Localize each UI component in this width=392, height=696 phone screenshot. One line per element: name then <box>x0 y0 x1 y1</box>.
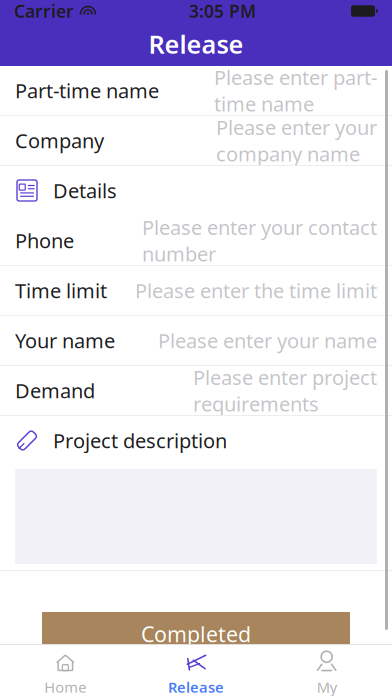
button[interactable]: My <box>261 644 392 696</box>
staticText: Please enter project requirements <box>193 364 377 417</box>
button[interactable]: Company <box>0 116 392 166</box>
button[interactable]: Project description <box>0 416 392 466</box>
staticText: Phone <box>15 227 74 254</box>
button[interactable]: Release <box>131 644 261 696</box>
staticText: Please enter part-time name <box>214 64 377 117</box>
staticText: Completed <box>141 620 251 648</box>
button[interactable]: Completed <box>42 612 350 656</box>
staticText: Home <box>44 677 86 696</box>
button[interactable]: Your name <box>0 316 392 366</box>
button[interactable]: Home <box>0 644 131 696</box>
staticText: Project description <box>53 427 227 454</box>
staticText: Carrier <box>14 0 74 22</box>
button[interactable] <box>0 466 392 564</box>
staticText: Please enter your company name <box>216 114 377 167</box>
staticText: Your name <box>15 327 115 354</box>
staticText: Details <box>53 177 117 204</box>
button[interactable]: Details <box>0 166 392 216</box>
staticText: Please enter your name <box>158 327 377 354</box>
button[interactable]: Demand <box>0 366 392 416</box>
staticText: Please enter your contact number <box>142 214 377 267</box>
button[interactable]: Time limit <box>0 266 392 316</box>
staticText: Release <box>168 677 224 696</box>
staticText: Time limit <box>15 277 107 304</box>
staticText: Company <box>15 127 104 154</box>
staticText: Demand <box>15 377 95 404</box>
staticText: My <box>317 677 337 696</box>
button[interactable]: Phone <box>0 216 392 266</box>
staticText: Release <box>148 27 243 61</box>
staticText: Part-time name <box>15 77 159 104</box>
staticText: Please enter the time limit <box>135 277 377 304</box>
button[interactable]: Part-time name <box>0 66 392 116</box>
staticText: 3:05 PM <box>189 0 256 22</box>
